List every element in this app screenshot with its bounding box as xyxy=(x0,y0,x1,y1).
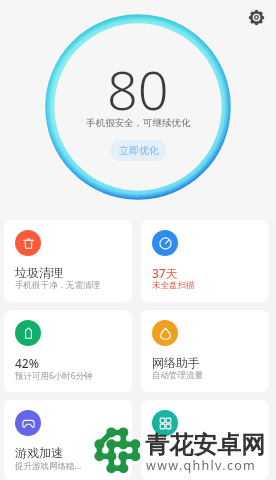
button[interactable]: Junk cleanup xyxy=(4,220,132,302)
staticText: 立即优化 xyxy=(119,144,159,157)
staticText: 37天 xyxy=(152,265,178,281)
button[interactable]: Settings xyxy=(243,4,269,30)
staticText: www.qhhlv.com xyxy=(146,457,257,474)
staticText: 42% xyxy=(15,355,39,371)
button[interactable]: Security scan xyxy=(141,220,269,302)
staticText: 手机很安全，可继续优化 xyxy=(86,117,191,129)
staticText: 网络助手 xyxy=(152,355,200,370)
staticText: 垃圾清理 xyxy=(15,265,63,280)
button[interactable]: Battery xyxy=(4,310,132,392)
staticText: 预计可用6小时6分钟 xyxy=(15,370,93,382)
staticText: 提升游戏网络稳... xyxy=(15,460,82,472)
staticText: 手机很干净，无需清理 xyxy=(15,280,100,291)
button[interactable]: 立即优化 xyxy=(110,140,167,161)
staticText: 青花安卓网 xyxy=(145,430,265,460)
button[interactable]: Game boost xyxy=(4,400,132,480)
staticText: 游戏加速 xyxy=(15,445,63,460)
button[interactable]: App manager xyxy=(141,400,269,480)
staticText: 未全盘扫描 xyxy=(152,280,195,291)
staticText: 自动管理流量 xyxy=(152,370,203,381)
button[interactable]: Network assistant xyxy=(141,310,269,392)
staticText: 80 xyxy=(107,52,169,126)
